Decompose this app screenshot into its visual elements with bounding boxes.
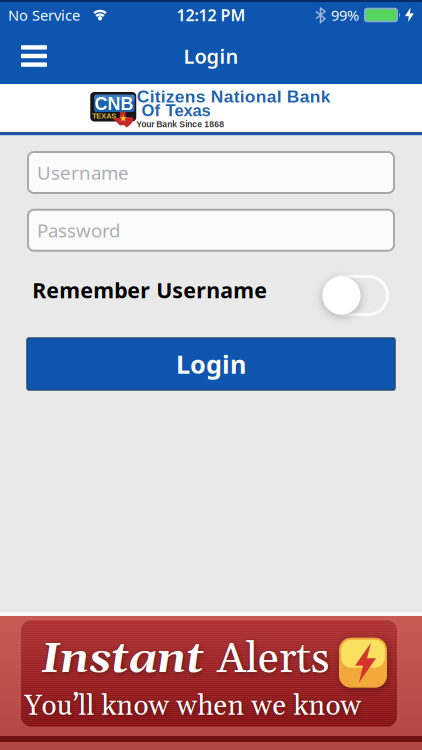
staticText: Alerts — [217, 632, 329, 687]
button[interactable]: Menu — [0, 37, 47, 75]
staticText: Citizens National Bank — [137, 87, 331, 106]
staticText: 12:12 PM — [176, 4, 245, 26]
staticText: Remember Username — [32, 276, 267, 304]
staticText: 99% — [331, 5, 359, 25]
button[interactable]: Password text field — [28, 210, 394, 251]
staticText: Login — [176, 347, 246, 381]
staticText: Of Texas — [141, 101, 210, 120]
staticText: CNB — [94, 94, 133, 114]
button[interactable]: Username text field — [28, 152, 394, 193]
staticText: No Service — [8, 5, 80, 25]
button[interactable]: Remember Username — [322, 274, 388, 316]
button[interactable]: Instant Alerts — You’ll know when we kno… — [0, 616, 422, 750]
staticText: Instant — [41, 632, 204, 687]
staticText: Login — [183, 43, 238, 69]
staticText: Password — [37, 218, 120, 243]
staticText: Username — [37, 160, 129, 185]
staticText: You’ll know when we know — [24, 689, 361, 724]
button[interactable]: Login — [27, 338, 395, 390]
staticText: Your Bank Since 1868 — [136, 120, 224, 129]
staticText: TEXAS — [92, 112, 116, 120]
